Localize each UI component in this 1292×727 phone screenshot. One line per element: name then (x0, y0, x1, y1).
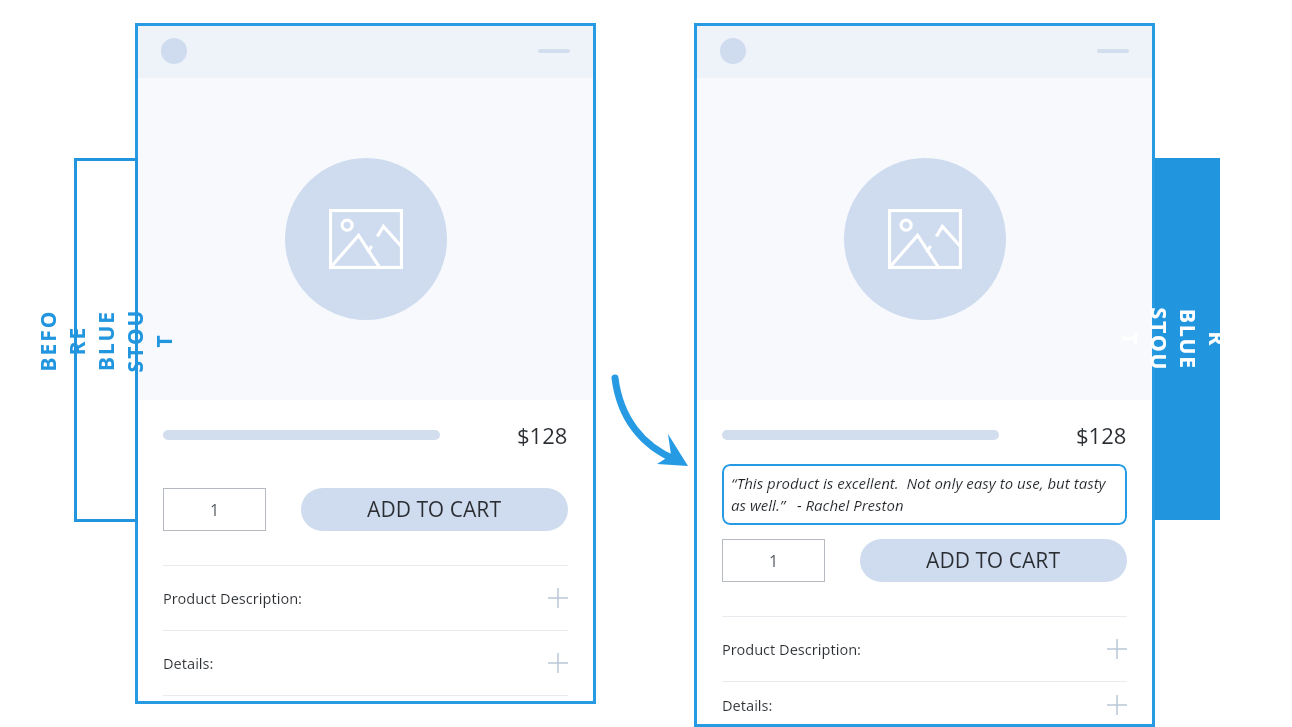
staticText: 1 (210, 499, 220, 521)
staticText: “This product is excellent. Not only eas… (731, 473, 1118, 516)
button[interactable]: 1 (722, 539, 825, 582)
button[interactable]: Product Description: (722, 617, 1127, 681)
button[interactable]: ADD TO CART (301, 488, 568, 531)
button[interactable]: 1 (163, 488, 266, 531)
button[interactable]: Menu (161, 38, 187, 64)
button[interactable]: Details: (163, 631, 568, 695)
staticText: Product Description: (163, 588, 302, 608)
staticText: AFTER BLUE STOUT (1115, 307, 1260, 372)
button[interactable]: Details: (722, 682, 1127, 727)
staticText: ADD TO CART (926, 546, 1061, 575)
staticText: $128 (517, 420, 568, 450)
button[interactable]: ADD TO CART (860, 539, 1127, 582)
staticText: Details: (163, 653, 214, 673)
button[interactable]: “This product is excellent. Not only eas… (731, 473, 1118, 516)
staticText: 1 (769, 550, 779, 572)
staticText: BEFORE BLUE STOUT (33, 308, 178, 372)
button[interactable]: BEFORE BLUE STOUT (74, 158, 138, 522)
button[interactable]: AFTER BLUE STOUT (1155, 158, 1220, 520)
staticText: Product Description: (722, 639, 861, 659)
staticText: Details: (722, 695, 773, 715)
button[interactable]: Minimize (538, 49, 570, 53)
staticText: $128 (1076, 420, 1127, 450)
staticText: ADD TO CART (367, 495, 502, 524)
button[interactable]: Product Description: (163, 566, 568, 630)
other: Transition arrow (600, 368, 696, 472)
button[interactable]: Menu (720, 38, 746, 64)
button[interactable]: Minimize (1097, 49, 1129, 53)
